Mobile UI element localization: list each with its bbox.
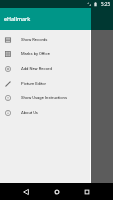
- button[interactable]: Show Usage Instructions: [0, 90, 91, 105]
- staticText: Show Records: [21, 37, 48, 42]
- staticText: Marks by Office: [21, 51, 50, 56]
- staticText: Picture Editor: [21, 81, 47, 86]
- button[interactable]: Add New Record: [0, 61, 91, 76]
- staticText: About Us: [21, 110, 38, 115]
- staticText: Show Usage Instructions: [21, 95, 68, 100]
- button[interactable]: Back: [18, 184, 34, 200]
- staticText: Add New Record: [21, 66, 52, 71]
- button[interactable]: About Us: [0, 105, 91, 120]
- staticText: eHallmark: [4, 15, 31, 22]
- button[interactable]: Home: [49, 184, 65, 200]
- button[interactable]: Recent apps: [79, 184, 95, 200]
- button[interactable]: Marks by Office: [0, 46, 91, 61]
- staticText: 5:25: [101, 1, 111, 7]
- button[interactable]: Picture Editor: [0, 76, 91, 91]
- button[interactable]: Show Records: [0, 32, 91, 47]
